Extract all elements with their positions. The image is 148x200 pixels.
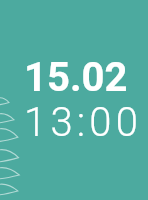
staticText: 15.02 (24, 54, 128, 101)
staticText: 13:00 (24, 99, 143, 146)
